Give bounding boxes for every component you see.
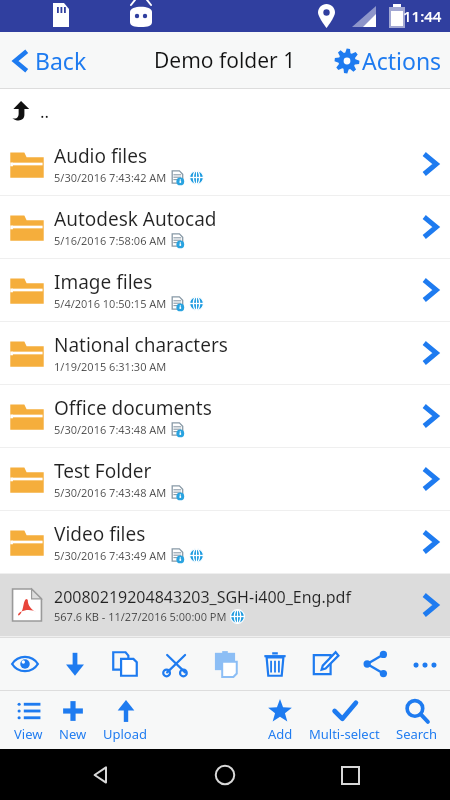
button[interactable]: Search (388, 694, 446, 747)
staticText: 5/16/2016 7:58:06 AM (54, 233, 167, 248)
button[interactable]: New (51, 694, 95, 747)
staticText: 5/4/2016 10:50:15 AM (54, 296, 167, 311)
staticText: 5/30/2016 7:43:48 AM (54, 422, 167, 437)
staticText: Actions (362, 45, 442, 76)
button[interactable]: View (6, 694, 51, 747)
staticText: 5/30/2016 7:43:49 AM (54, 548, 167, 563)
button[interactable]: Home (201, 751, 249, 799)
staticText: 20080219204843203_SGH-i400_Eng.pdf (54, 586, 351, 608)
staticText: Upload (103, 725, 148, 743)
button[interactable]: Add (259, 694, 301, 747)
button[interactable]: Upload (95, 694, 156, 747)
staticText: Multi-select (309, 725, 380, 743)
staticText: 5/30/2016 7:43:42 AM (54, 170, 167, 185)
button[interactable]: .. (0, 89, 450, 133)
button[interactable]: Autodesk Autocad (0, 196, 450, 258)
button[interactable]: Paste (204, 643, 246, 685)
staticText: .. (40, 100, 50, 123)
staticText: New (59, 725, 87, 743)
staticText: 5/30/2016 7:43:48 AM (54, 485, 167, 500)
staticText: Image files (54, 269, 153, 295)
staticText: Search (396, 725, 438, 743)
staticText: Office documents (54, 395, 212, 421)
button[interactable]: Back (77, 751, 125, 799)
button[interactable]: 20080219204843203_SGH-i400_Eng.pdf (0, 574, 450, 636)
button[interactable]: Multi-select (301, 694, 388, 747)
staticText: View (14, 725, 43, 743)
button[interactable]: Test Folder (0, 448, 450, 510)
staticText: 1/19/2015 6:31:30 AM (54, 359, 167, 374)
button[interactable]: More (404, 643, 446, 685)
staticText: Audio files (54, 143, 148, 169)
staticText: National characters (54, 332, 228, 358)
button[interactable]: Rename (304, 643, 346, 685)
button[interactable]: Copy (104, 643, 146, 685)
staticText: 567.6 KB - 11/27/2016 5:00:00 PM (54, 609, 227, 624)
button[interactable]: Cut (154, 643, 196, 685)
button[interactable]: Audio files (0, 133, 450, 195)
button[interactable]: Delete (254, 643, 296, 685)
staticText: Video files (54, 521, 146, 547)
staticText: Autodesk Autocad (54, 206, 217, 232)
staticText: Demo folder 1 (154, 46, 296, 75)
button[interactable]: Video files (0, 511, 450, 573)
button[interactable]: Recents (326, 751, 374, 799)
staticText: Back (35, 45, 87, 76)
staticText: 11:44 (403, 6, 442, 26)
staticText: Add (268, 725, 293, 743)
staticText: Test Folder (54, 458, 152, 484)
button[interactable]: National characters (0, 322, 450, 384)
button[interactable]: Back (0, 39, 99, 82)
button[interactable]: Download (54, 643, 96, 685)
button[interactable]: Image files (0, 259, 450, 321)
button[interactable]: View (4, 643, 46, 685)
button[interactable]: Actions (324, 39, 450, 82)
button[interactable]: Share (354, 643, 396, 685)
button[interactable]: Office documents (0, 385, 450, 447)
